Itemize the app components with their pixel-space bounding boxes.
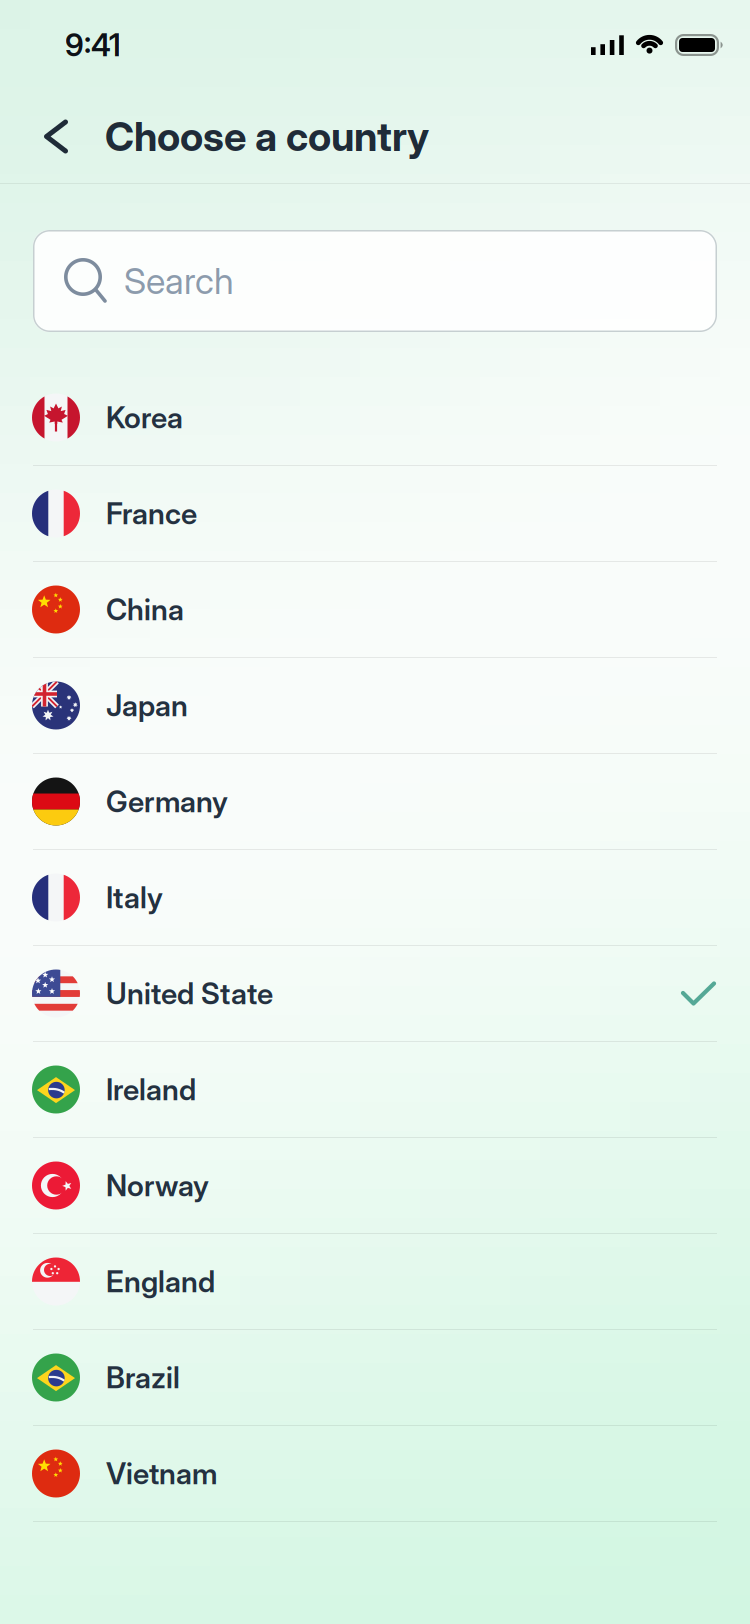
button[interactable]: China — [0, 562, 750, 658]
staticText: Brazil — [106, 1360, 180, 1395]
staticText: England — [106, 1264, 215, 1299]
button[interactable]: Germany — [0, 754, 750, 850]
staticText: United State — [106, 976, 273, 1011]
button[interactable]: France — [0, 466, 750, 562]
button[interactable]: Vietnam — [0, 1426, 750, 1522]
staticText: Italy — [106, 880, 163, 915]
staticText: 9:41 — [65, 27, 121, 63]
button[interactable]: Korea — [0, 370, 750, 466]
button[interactable]: Brazil — [0, 1330, 750, 1426]
staticText: France — [106, 496, 197, 531]
staticText: Germany — [106, 784, 228, 819]
button[interactable]: Japan — [0, 658, 750, 754]
staticText: Choose a country — [105, 113, 429, 160]
staticText: China — [106, 592, 184, 627]
staticText: Norway — [106, 1168, 209, 1203]
button[interactable]: Search — [33, 230, 717, 332]
staticText: Search — [124, 260, 234, 302]
button[interactable]: Ireland — [0, 1042, 750, 1138]
button[interactable]: Italy — [0, 850, 750, 946]
button[interactable]: United State — [0, 946, 750, 1042]
staticText: Vietnam — [106, 1456, 217, 1491]
button[interactable]: Back — [42, 120, 70, 153]
button[interactable]: England — [0, 1234, 750, 1330]
staticText: Japan — [106, 688, 188, 723]
button[interactable]: Norway — [0, 1138, 750, 1234]
staticText: Ireland — [106, 1072, 196, 1107]
staticText: Korea — [106, 400, 183, 435]
